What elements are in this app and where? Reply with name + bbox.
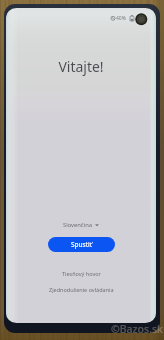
button[interactable]: Spustiť — [48, 237, 115, 252]
button[interactable]: Zjednodušenie ovládania — [47, 284, 116, 295]
staticText: 40% — [116, 15, 126, 22]
staticText: Spustiť — [71, 240, 93, 249]
staticText: Slovenčina — [63, 221, 92, 229]
staticText: Vitajte! — [6, 57, 156, 76]
button[interactable]: Tiesňový hovor — [60, 268, 103, 279]
staticText: ©Bazos.sk — [111, 322, 163, 336]
button[interactable]: Slovenčina — [59, 219, 103, 231]
